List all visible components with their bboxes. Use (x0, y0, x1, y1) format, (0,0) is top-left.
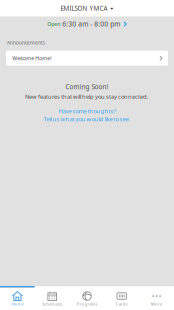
staticText: Schedules (42, 301, 62, 307)
button[interactable]: More (139, 288, 174, 310)
staticText: Welcome Home! (12, 55, 51, 62)
staticText: Have some thoughts? (58, 107, 115, 115)
staticText: New features that will help you stay con… (25, 93, 149, 100)
button[interactable]: EMILSON YMCA (0, 0, 174, 16)
button[interactable]: Home (0, 288, 35, 310)
button[interactable]: Schedules (35, 288, 70, 310)
staticText: Open (47, 21, 60, 27)
staticText: 6:30 am - 8:00 pm (60, 20, 120, 28)
button[interactable]: Cards (104, 288, 139, 310)
button[interactable]: Have some thoughts? (43, 108, 130, 123)
button[interactable]: Welcome Home! (6, 51, 168, 66)
staticText: Programs (76, 301, 97, 307)
staticText: EMILSON YMCA (61, 4, 108, 12)
staticText: More (151, 301, 162, 307)
staticText: Announcements (7, 39, 45, 46)
staticText: Tell us what you would like to see. (43, 115, 130, 123)
staticText: Home (11, 301, 23, 307)
staticText: Coming Soon! (65, 82, 108, 91)
staticText: Cards (116, 301, 128, 307)
button[interactable]: Open (0, 16, 174, 31)
button[interactable]: Programs (70, 288, 104, 310)
